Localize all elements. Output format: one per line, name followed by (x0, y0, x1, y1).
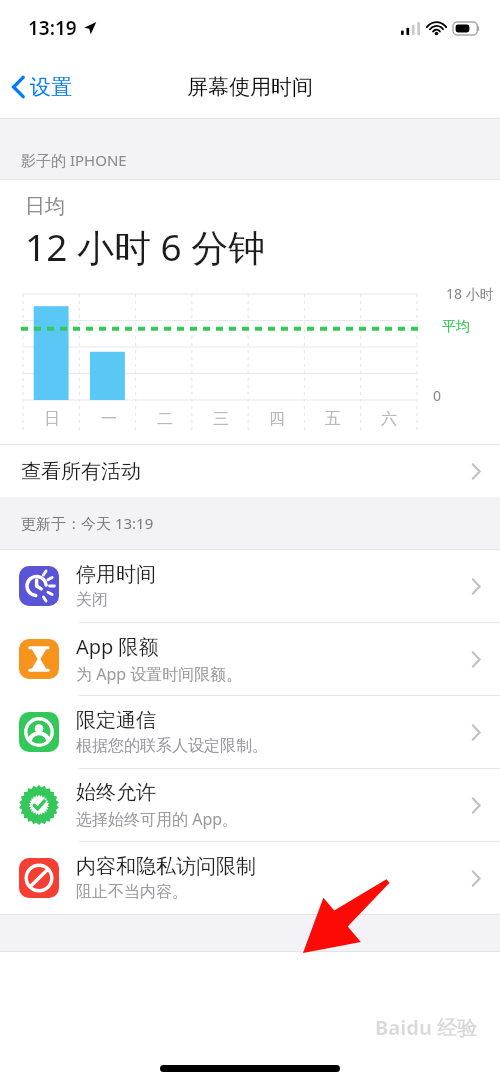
staticText: 六 (381, 409, 397, 429)
button[interactable]: 停用时间 (0, 550, 500, 622)
staticText: 关闭 (76, 590, 108, 610)
staticText: 限定通信 (76, 708, 156, 733)
staticText: 为 App 设置时间限额。 (76, 663, 243, 685)
staticText: 二 (157, 409, 173, 429)
staticText: 三 (213, 409, 229, 429)
staticText: Baidu 经验 (375, 1014, 478, 1041)
button[interactable]: 查看所有活动 (0, 445, 500, 497)
staticText: 选择始终可用的 App。 (76, 808, 239, 830)
button[interactable]: 限定通信 (0, 696, 500, 768)
staticText: 平均 (442, 318, 470, 336)
staticText: 查看所有活动 (21, 459, 141, 484)
staticText: 屏幕使用时间 (187, 74, 313, 100)
staticText: 18 小时 (446, 284, 494, 303)
staticText: 内容和隐私访问限制 (76, 854, 256, 879)
staticText: 日均 (25, 194, 65, 219)
staticText: 日 (44, 409, 60, 429)
staticText: 设置 (30, 74, 72, 100)
button[interactable]: 始终允许 (0, 769, 500, 841)
staticText: 12 小时 6 分钟 (25, 221, 266, 272)
staticText: 13:19 (28, 15, 77, 41)
staticText: 一 (101, 409, 117, 429)
staticText: 阻止不当内容。 (76, 882, 188, 902)
staticText: 0 (433, 386, 442, 405)
staticText: 四 (269, 409, 285, 429)
staticText: 影子的 IPHONE (21, 150, 127, 170)
staticText: 五 (325, 409, 341, 429)
staticText: App 限额 (76, 633, 159, 660)
staticText: 更新于：今天 13:19 (21, 513, 154, 533)
button[interactable]: 设置 (0, 68, 84, 106)
button[interactable]: App 限额 (0, 623, 500, 695)
button[interactable]: 内容和隐私访问限制 (0, 842, 500, 914)
staticText: 停用时间 (76, 562, 156, 587)
staticText: 根据您的联系人设定限制。 (76, 736, 268, 756)
staticText: 始终允许 (76, 780, 156, 805)
